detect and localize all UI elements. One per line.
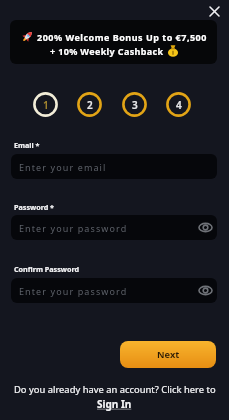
- staticText: 2: [87, 98, 93, 112]
- staticText: + 10% Weekly Cashback: [50, 45, 164, 57]
- button[interactable]: Enter your password: [11, 215, 217, 240]
- staticText: Enter your password: [19, 285, 128, 297]
- staticText: 1: [43, 98, 49, 112]
- button[interactable]: Sign In: [97, 397, 132, 411]
- button[interactable]: Enter your password: [11, 278, 217, 303]
- button[interactable]: Enter your email: [11, 154, 217, 179]
- staticText: Confirm Password: [14, 264, 80, 274]
- staticText: Sign In: [97, 397, 132, 411]
- staticText: Password *: [14, 202, 55, 212]
- staticText: Next: [157, 348, 180, 361]
- staticText: 4: [176, 98, 182, 112]
- staticText: Enter your email: [19, 161, 107, 173]
- staticText: 3: [132, 98, 138, 112]
- button[interactable]: [206, 3, 222, 19]
- button[interactable]: 200% Welcome Bonus Up to €7,500: [10, 20, 217, 64]
- staticText: 200% Welcome Bonus Up to €7,500: [37, 31, 207, 43]
- staticText: Do you already have an account? Click he…: [14, 383, 216, 396]
- staticText: Email *: [14, 140, 40, 150]
- staticText: Enter your password: [19, 222, 128, 234]
- button[interactable]: Next: [120, 341, 216, 368]
